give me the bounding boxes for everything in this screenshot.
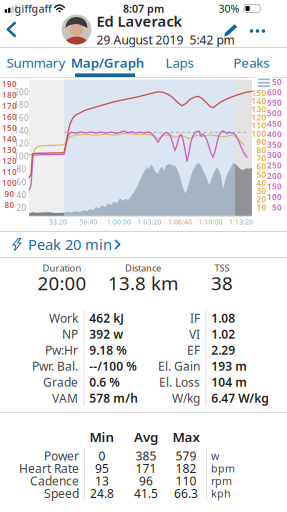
staticText: giffgaff [14,1,51,16]
staticText: 579 [175,448,196,464]
staticText: 100 [267,191,282,202]
staticText: Duration [42,262,81,274]
staticText: 200 [267,171,282,181]
staticText: 10 [256,202,266,213]
staticText: 20 [16,202,26,213]
button[interactable]: Laps [143,48,215,75]
staticText: 180 [14,100,29,110]
staticText: 385 [135,448,156,464]
button[interactable]: Edit [223,24,237,37]
staticText: 450 [267,118,282,129]
staticText: Max [172,428,199,446]
staticText: IF [190,310,200,326]
staticText: EF [187,342,200,358]
staticText: Avg [134,428,158,446]
staticText: 182 [175,460,196,476]
staticText: 24.8 [90,485,114,501]
staticText: 20 [256,194,266,204]
staticText: 13 [95,473,109,489]
staticText: 110 [175,473,196,489]
staticText: 150 [267,181,282,192]
staticText: Speed [44,485,79,501]
staticText: 120 [251,112,266,123]
staticText: Summary [6,54,65,71]
staticText: 130 [2,144,17,155]
staticText: 171 [135,460,156,476]
staticText: 578 m/h [89,390,138,406]
staticText: 140 [251,96,266,106]
staticText: 110 [2,166,17,177]
staticText: 130 [251,104,266,114]
staticText: 80 [4,199,14,210]
staticText: 38 [211,271,233,295]
staticText: VAM [52,390,78,406]
staticText: 650 [267,76,282,87]
staticText: 462 kJ [89,310,124,326]
staticText: 13.8 km [108,271,178,295]
button[interactable]: Peak 20 min [0,231,287,258]
staticText: 550 [267,97,282,108]
staticText: 96 [139,473,153,489]
button[interactable]: Summary [0,48,72,75]
staticText: 500 [267,108,282,118]
staticText: 150 [251,87,266,98]
staticText: 9.18 % [89,342,127,358]
staticText: 600 [267,87,282,97]
button[interactable]: Map/Graph [72,48,144,75]
staticText: Distance [125,262,161,274]
staticText: 1:03:20 [137,217,161,226]
button[interactable]: Chart menu [256,76,272,89]
button[interactable]: Peaks [215,48,287,75]
staticText: 2.29 [211,342,235,358]
staticText: 56:40 [79,217,97,226]
staticText: 8:07 pm [123,1,164,16]
staticText: Cadence [30,473,79,489]
staticText: 90 [4,188,14,199]
staticText: 30% [218,1,239,16]
staticText: 1:00:00 [107,217,131,226]
staticText: 100 [2,177,17,188]
staticText: 40 [16,190,26,200]
staticText: 120 [14,138,29,149]
staticText: Pwr. Bal. [32,358,78,374]
staticText: 50 [256,169,266,180]
staticText: El. Gain [158,358,200,374]
staticText: 1.08 [211,310,235,326]
staticText: Power [44,448,79,464]
staticText: 60 [256,161,266,172]
staticText: 104 m [211,374,247,390]
staticText: Map/Graph [71,54,145,71]
staticText: Peak 20 min [28,235,112,254]
staticText: NP [62,326,78,342]
staticText: 29 August 2019 5:42 pm [96,32,234,48]
staticText: W/kg [172,390,200,406]
staticText: 160 [2,111,17,122]
staticText: 100 [14,151,29,162]
staticText: 190 [2,78,17,89]
staticText: bpm [211,461,235,475]
staticText: Peaks [233,54,269,71]
staticText: 1:13:20 [229,217,253,226]
staticText: 0.6 % [89,374,120,390]
staticText: 120 [2,155,17,166]
staticText: Heart Rate [19,460,79,476]
button[interactable]: More [250,29,265,33]
staticText: 110 [251,120,266,131]
staticText: 90 [256,137,266,147]
staticText: 140 [2,133,17,144]
staticText: VI [189,326,200,342]
staticText: 30 [256,186,266,196]
staticText: 140 [14,125,29,136]
staticText: 95 [95,460,109,476]
staticText: TSS [214,262,229,274]
staticText: w [211,449,219,463]
staticText: 60 [16,177,26,187]
staticText: Work [49,310,78,326]
button[interactable]: Ed Laverack [61,11,234,48]
staticText: 6.47 W/kg [211,390,269,406]
staticText: Min [89,428,114,446]
button[interactable]: Back [6,22,16,37]
staticText: 50 [272,202,282,213]
staticText: 70 [256,153,266,163]
staticText: Laps [165,54,193,71]
